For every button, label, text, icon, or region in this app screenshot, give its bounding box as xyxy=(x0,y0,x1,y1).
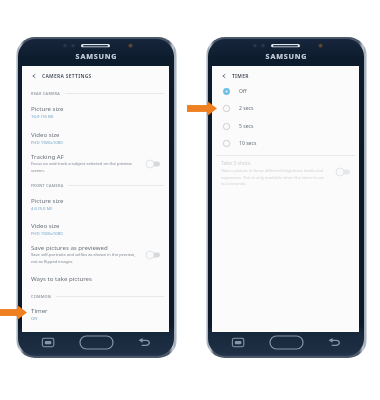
button[interactable]: Back xyxy=(212,66,359,86)
staticText: Picture size xyxy=(31,104,64,112)
staticText: Take 3 shots xyxy=(221,160,251,167)
staticText: FRONT CAMERA xyxy=(31,183,64,188)
staticText: COMMON xyxy=(31,294,52,299)
staticText: 5 secs xyxy=(239,123,254,130)
staticText: 10 secs xyxy=(239,140,257,147)
button[interactable]: Timer xyxy=(22,304,169,328)
button[interactable]: Tracking AF xyxy=(22,150,169,178)
staticText: 16:9 (16 M) xyxy=(31,113,54,119)
button[interactable]: Picture size xyxy=(22,102,169,126)
button[interactable]: Take 3 shots xyxy=(212,158,359,185)
button[interactable]: Off xyxy=(212,83,359,100)
staticText: Off xyxy=(239,88,247,95)
button[interactable]: Video size xyxy=(22,128,169,152)
staticText: 2 secs xyxy=(239,105,254,112)
button[interactable]: Picture size xyxy=(22,194,169,218)
staticText: REAR CAMERA xyxy=(31,91,61,96)
staticText: Video size xyxy=(31,221,60,229)
button[interactable]: Video size xyxy=(22,219,169,243)
staticText: Picture size xyxy=(31,196,64,204)
staticText: exposures. This is only available when t… xyxy=(221,175,324,181)
button[interactable]: Back xyxy=(22,66,42,86)
staticText: Save pictures as previewed xyxy=(31,243,108,251)
staticText: Focus on and track a subject selected on… xyxy=(31,161,132,167)
staticText: 4:3 (5.0 M) xyxy=(31,205,52,211)
button[interactable]: Back xyxy=(22,66,169,86)
staticText: Tracking AF xyxy=(31,152,64,160)
button[interactable]: 10 secs xyxy=(212,135,359,152)
staticText: to 2 seconds. xyxy=(221,181,247,187)
staticText: CAMERA SETTINGS xyxy=(42,73,92,80)
staticText: Save self-portraits and selfies as shown… xyxy=(31,252,136,258)
staticText: not as flipped images. xyxy=(31,259,74,265)
button[interactable]: Ways to take pictures xyxy=(22,270,169,286)
staticText: TIMER xyxy=(232,73,249,80)
staticText: Ways to take pictures xyxy=(31,274,92,282)
button[interactable]: Back xyxy=(212,66,232,86)
staticText: Timer xyxy=(31,306,48,314)
button[interactable]: 2 secs xyxy=(212,100,359,117)
button[interactable]: 5 secs xyxy=(212,118,359,135)
staticText: FHD 1920x1080 xyxy=(31,230,63,236)
staticText: Off xyxy=(31,315,38,321)
staticText: Take a picture in three different bright… xyxy=(221,168,324,174)
staticText: screen. xyxy=(31,168,45,174)
staticText: SAMSUNG xyxy=(206,51,367,61)
staticText: SAMSUNG xyxy=(16,51,177,61)
button[interactable]: Save pictures as previewed xyxy=(22,241,169,269)
staticText: Video size xyxy=(31,130,60,138)
staticText: FHD 1920x1080 xyxy=(31,139,63,145)
